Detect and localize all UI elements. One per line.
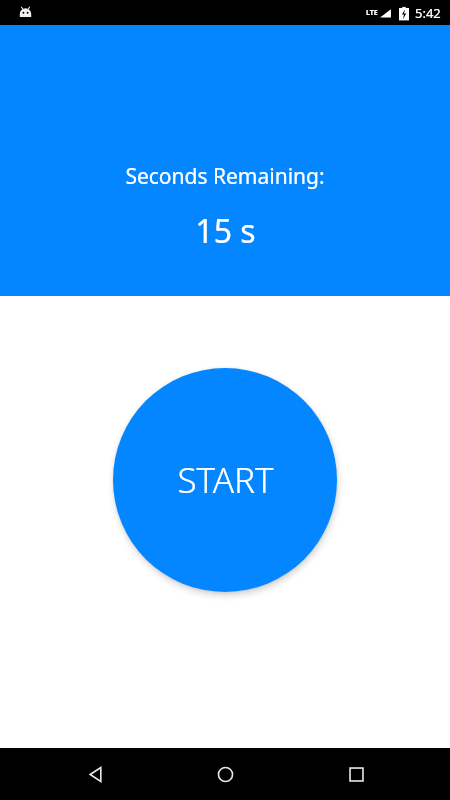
button[interactable]: Home — [189, 748, 261, 800]
button[interactable]: Recent apps — [320, 748, 392, 800]
button[interactable]: START — [113, 368, 337, 592]
staticText: LTE — [366, 8, 378, 18]
staticText: START — [177, 456, 274, 504]
staticText: Seconds Remaining: — [125, 162, 325, 191]
staticText: 15 s — [195, 209, 256, 253]
staticText: 5:42 — [415, 4, 441, 22]
button[interactable]: Back — [59, 748, 131, 800]
